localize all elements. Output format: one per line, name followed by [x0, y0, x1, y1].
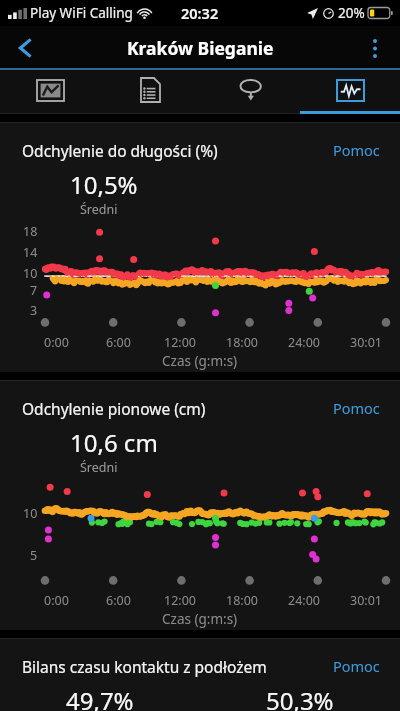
staticText: 12:00 [164, 334, 196, 351]
staticText: 24:00 [288, 592, 320, 609]
staticText: Czas (g:m:s) [162, 610, 238, 628]
staticText: 3 [30, 302, 38, 319]
staticText: 18:00 [226, 592, 258, 609]
staticText: 6:00 [106, 334, 131, 351]
staticText: 5 [30, 547, 38, 564]
staticText: 12:00 [164, 592, 196, 609]
staticText: Średni [80, 201, 118, 218]
staticText: 20% [338, 4, 365, 22]
button[interactable]: Pomoc [329, 394, 384, 422]
button[interactable]: Pomoc [329, 652, 384, 680]
staticText: Pomoc [333, 140, 380, 160]
staticText: 6:00 [106, 592, 131, 609]
button[interactable]: Pomoc [329, 136, 384, 164]
staticText: 49,7% [66, 684, 134, 711]
staticText: 10,6 cm [70, 426, 158, 459]
staticText: 18 [23, 223, 38, 240]
staticText: Odchylenie pionowe (cm) [22, 398, 206, 419]
button[interactable]: Bilans czasu kontaktu z podłożem [0, 638, 400, 711]
button[interactable]: Charts [300, 70, 400, 114]
button[interactable]: More options [350, 26, 400, 70]
staticText: 10 [23, 505, 38, 522]
staticText: 24:00 [288, 334, 320, 351]
staticText: Pomoc [333, 656, 380, 676]
staticText: 7 [30, 282, 38, 299]
staticText: Pomoc [333, 398, 380, 418]
staticText: 50,3% [266, 684, 334, 711]
button[interactable]: Back [0, 26, 50, 70]
button[interactable]: Details [100, 70, 200, 114]
staticText: Czas (g:m:s) [162, 352, 238, 370]
staticText: Bilans czasu kontaktu z podłożem [22, 656, 267, 677]
button[interactable]: Map [0, 70, 100, 114]
staticText: Play WiFi Calling [30, 4, 133, 22]
staticText: 10,5% [70, 168, 138, 201]
staticText: Średni [80, 459, 118, 476]
staticText: 14 [23, 244, 38, 261]
staticText: Kraków Bieganie [127, 36, 274, 60]
button[interactable]: Odchylenie do długości (%) [0, 122, 400, 372]
staticText: 10 [23, 265, 38, 282]
button[interactable]: Odchylenie pionowe (cm) [0, 380, 400, 630]
staticText: Odchylenie do długości (%) [22, 140, 218, 161]
staticText: 18:00 [226, 334, 258, 351]
staticText: 20:32 [181, 3, 219, 23]
staticText: 0:00 [44, 334, 69, 351]
staticText: 30:01 [350, 334, 382, 351]
staticText: 0:00 [44, 592, 69, 609]
button[interactable]: Laps [200, 70, 300, 114]
staticText: 30:01 [350, 592, 382, 609]
